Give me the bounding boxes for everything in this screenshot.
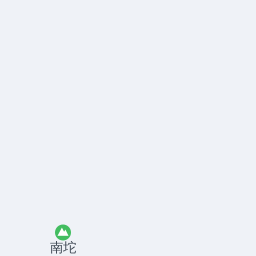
staticText: 南坨 xyxy=(50,239,76,256)
button[interactable]: 南坨 xyxy=(46,225,80,256)
